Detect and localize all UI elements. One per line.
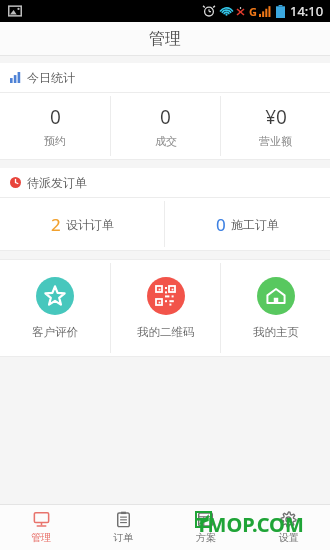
staticText: G bbox=[249, 4, 257, 19]
button[interactable]: 我的主页 bbox=[221, 260, 330, 356]
button[interactable]: 方案 bbox=[164, 504, 247, 550]
staticText: 管理 bbox=[31, 531, 51, 544]
staticText: 今日统计 bbox=[27, 70, 75, 85]
staticText: 0 bbox=[216, 213, 226, 236]
staticText: 营业额 bbox=[259, 134, 292, 148]
button[interactable]: 2 bbox=[0, 198, 164, 250]
button[interactable]: ¥0 bbox=[221, 93, 330, 159]
staticText: 待派发订单 bbox=[27, 175, 87, 190]
staticText: ¥0 bbox=[265, 104, 287, 130]
staticText: 管理 bbox=[149, 29, 181, 49]
button[interactable]: 客户评价 bbox=[0, 260, 110, 356]
staticText: 0 bbox=[50, 104, 61, 130]
staticText: 客户评价 bbox=[32, 325, 78, 339]
staticText: 成交 bbox=[155, 134, 177, 148]
staticText: 施工订单 bbox=[231, 217, 279, 232]
staticText: 14:10 bbox=[290, 2, 324, 20]
button[interactable]: 订单 bbox=[82, 504, 164, 550]
staticText: 预约 bbox=[44, 134, 66, 148]
button[interactable]: 0 bbox=[0, 93, 110, 159]
button[interactable]: 管理 bbox=[0, 504, 82, 550]
staticText: 设计订单 bbox=[66, 217, 114, 232]
staticText: 我的二维码 bbox=[137, 325, 195, 339]
staticText: 2 bbox=[51, 213, 61, 236]
staticText: 方案 bbox=[196, 531, 216, 544]
staticText: 我的主页 bbox=[253, 325, 299, 339]
staticText: 订单 bbox=[113, 531, 133, 544]
staticText: 0 bbox=[160, 104, 171, 130]
button[interactable]: 我的二维码 bbox=[111, 260, 220, 356]
button[interactable]: 0 bbox=[165, 198, 330, 250]
staticText: TMOP.COM bbox=[196, 511, 304, 538]
staticText: 设置 bbox=[279, 531, 299, 544]
button[interactable]: 0 bbox=[111, 93, 220, 159]
button[interactable]: 设置 bbox=[247, 504, 330, 550]
